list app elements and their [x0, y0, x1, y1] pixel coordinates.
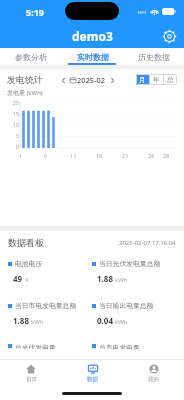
staticText: 电池电压	[15, 259, 43, 268]
staticText: 15	[12, 110, 19, 117]
staticText: 16	[96, 152, 103, 159]
staticText: 20	[12, 99, 19, 106]
staticText: V	[25, 276, 29, 284]
button[interactable]: 总市电发电量	[92, 343, 176, 349]
button[interactable]: 首页	[0, 360, 62, 387]
button[interactable]: 当日光伏发电量总额	[92, 259, 176, 284]
staticText: 发电统计	[7, 74, 43, 85]
button[interactable]: 总	[164, 74, 177, 85]
staticText: 总	[167, 76, 174, 84]
staticText: 1	[19, 152, 23, 159]
staticText: 月	[139, 76, 146, 84]
staticText: 首页	[26, 376, 37, 383]
button[interactable]: 我的	[123, 360, 184, 387]
staticText: 当日光伏发电量总额	[99, 259, 161, 268]
staticText: 参数分析	[15, 52, 47, 62]
staticText: 11	[70, 152, 77, 159]
staticText: 26	[148, 152, 155, 159]
button[interactable]: 当日输出电量总额	[92, 301, 176, 326]
button[interactable]: Previous month	[59, 76, 68, 85]
staticText: 数据看板	[8, 237, 44, 248]
staticText: 10	[12, 121, 19, 128]
staticText: 5	[15, 132, 19, 139]
staticText: 历史数据	[138, 52, 170, 62]
button[interactable]: 数据	[62, 360, 123, 387]
staticText: kWh	[31, 318, 44, 326]
button[interactable]: 参数分析	[0, 48, 62, 65]
button[interactable]: 实时数据	[62, 48, 123, 65]
staticText: 1.88	[13, 315, 29, 326]
button[interactable]: 当日市电发电量总额	[8, 301, 92, 326]
button[interactable]: 总光伏发电量	[8, 343, 92, 349]
staticText: 2025-02-07 17:16:04	[119, 239, 176, 247]
button[interactable]: Next month	[108, 76, 117, 85]
staticText: 1.88	[97, 273, 113, 284]
staticText: 发电量 (kWh)	[7, 89, 43, 97]
staticText: 当日市电发电量总额	[15, 301, 77, 310]
button[interactable]: 月	[136, 74, 149, 85]
staticText: kWh	[115, 318, 128, 326]
staticText: 28	[163, 152, 170, 159]
staticText: 当日输出电量总额	[99, 301, 154, 310]
staticText: 年	[153, 76, 160, 84]
button[interactable]: 电池电压	[8, 259, 92, 284]
staticText: kWh	[115, 276, 128, 284]
staticText: 5:19	[26, 6, 44, 18]
staticText: 数据	[87, 376, 98, 383]
staticText: 总市电发电量	[99, 343, 140, 349]
staticText: 49	[13, 273, 23, 284]
button[interactable]: 历史数据	[123, 48, 184, 65]
staticText: 总光伏发电量	[15, 343, 56, 349]
button[interactable]: Settings	[160, 27, 178, 45]
staticText: 我的	[148, 376, 159, 383]
button[interactable]: 年	[150, 74, 163, 85]
staticText: demo3	[72, 28, 113, 44]
staticText: 21	[122, 152, 129, 159]
staticText: 0	[15, 143, 19, 150]
staticText: 0.04	[97, 315, 113, 326]
staticText: 6	[44, 152, 48, 159]
staticText: 实时数据	[77, 52, 109, 62]
staticText: 2025-02	[77, 75, 106, 85]
